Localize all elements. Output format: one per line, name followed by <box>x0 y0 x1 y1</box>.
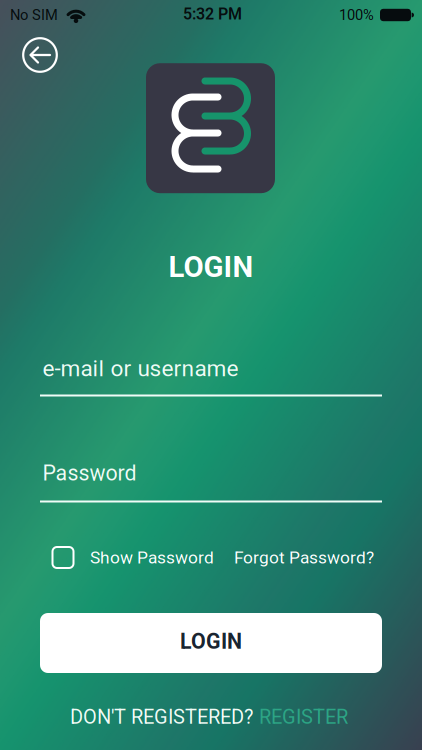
button[interactable]: Forgot Password? <box>234 548 374 567</box>
staticText: Show Password <box>90 548 214 567</box>
staticText: LOGIN <box>180 629 242 654</box>
staticText: REGISTER <box>259 706 348 728</box>
button[interactable]: Show Password <box>52 546 214 569</box>
button[interactable]: e-mail or username <box>40 339 382 397</box>
staticText: DON'T REGISTERED? <box>70 706 253 728</box>
staticText: Password <box>42 461 136 485</box>
staticText: Forgot Password? <box>234 548 374 567</box>
staticText: LOGIN <box>168 250 253 284</box>
staticText: 100% <box>339 7 374 23</box>
button[interactable]: REGISTER <box>259 706 348 728</box>
staticText: 5:32 PM <box>183 5 242 23</box>
button[interactable]: Back <box>20 35 60 75</box>
staticText: e-mail or username <box>42 356 238 381</box>
button[interactable]: LOGIN <box>40 613 382 673</box>
button[interactable]: Password <box>40 445 382 503</box>
staticText: No SIM <box>10 7 58 23</box>
